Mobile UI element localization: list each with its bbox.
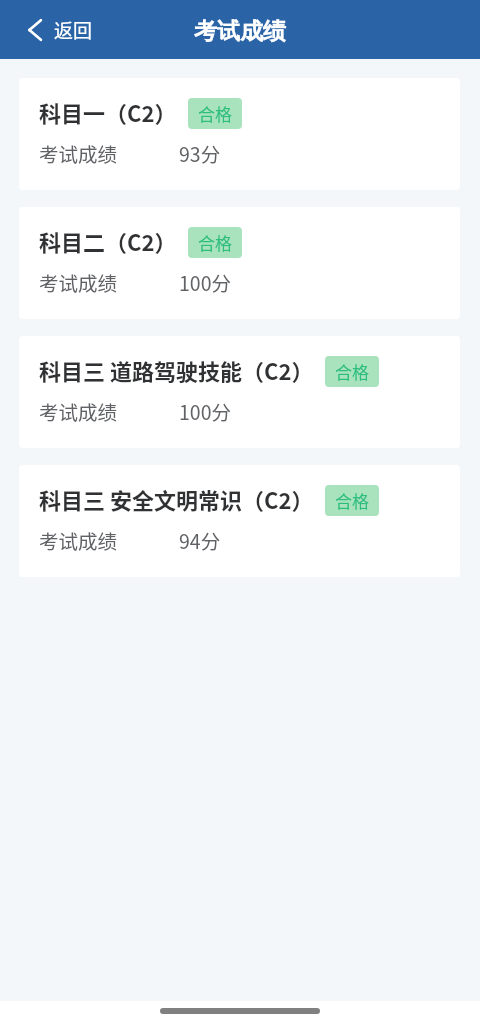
- staticText: 科目三 安全文明常识（C2）: [39, 483, 314, 515]
- staticText: 94分: [179, 526, 221, 554]
- staticText: 合格: [335, 488, 369, 513]
- staticText: 考试成绩: [39, 268, 118, 296]
- staticText: 合格: [335, 359, 369, 384]
- button[interactable]: 科目三 安全文明常识（C2）: [19, 465, 460, 577]
- staticText: 考试成绩: [194, 17, 286, 46]
- button[interactable]: 返回: [26, 10, 95, 50]
- button[interactable]: 科目一（C2）: [19, 78, 460, 190]
- staticText: 93分: [179, 139, 221, 167]
- staticText: 科目一（C2）: [39, 96, 177, 128]
- staticText: 合格: [198, 101, 232, 126]
- staticText: 科目二（C2）: [39, 225, 177, 257]
- button[interactable]: 科目二（C2）: [19, 207, 460, 319]
- button[interactable]: 科目三 道路驾驶技能（C2）: [19, 336, 460, 448]
- staticText: 考试成绩: [39, 397, 118, 425]
- staticText: 100分: [179, 268, 231, 296]
- staticText: 科目三 道路驾驶技能（C2）: [39, 354, 314, 386]
- staticText: 考试成绩: [39, 526, 118, 554]
- staticText: 100分: [179, 397, 231, 425]
- staticText: 考试成绩: [39, 139, 118, 167]
- staticText: 返回: [54, 16, 93, 44]
- staticText: 合格: [198, 230, 232, 255]
